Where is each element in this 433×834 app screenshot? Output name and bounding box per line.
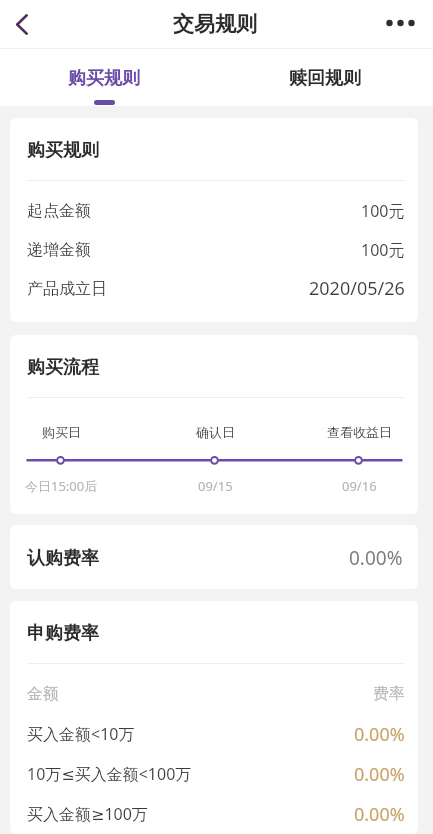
- staticText: 购买日: [42, 424, 81, 440]
- staticText: 0.00%: [354, 722, 405, 747]
- staticText: 购买规则: [27, 139, 99, 162]
- staticText: 产品成立日: [27, 279, 107, 299]
- staticText: 0.00%: [354, 802, 405, 827]
- button[interactable]: More options: [374, 0, 426, 47]
- staticText: 认购费率: [27, 547, 99, 570]
- button[interactable]: 买入金额≥100万: [10, 794, 418, 834]
- staticText: 查看收益日: [327, 424, 392, 440]
- staticText: 金额: [27, 684, 59, 704]
- staticText: 赎回规则: [289, 67, 361, 90]
- staticText: 0.00%: [354, 762, 405, 787]
- staticText: 费率: [373, 684, 405, 704]
- staticText: 买入金额≥100万: [27, 803, 148, 825]
- staticText: 10万≤买入金额<100万: [27, 763, 192, 785]
- staticText: 确认日: [196, 424, 235, 440]
- staticText: 09/15: [198, 477, 233, 495]
- button[interactable]: 赎回规则: [263, 49, 387, 106]
- staticText: 2020/05/26: [309, 276, 405, 301]
- staticText: 购买规则: [68, 67, 140, 90]
- staticText: 100元: [361, 239, 405, 261]
- button[interactable]: 起点金额: [10, 191, 418, 230]
- button[interactable]: 产品成立日: [10, 269, 418, 308]
- staticText: 100元: [361, 200, 405, 222]
- button[interactable]: 10万≤买入金额<100万: [10, 754, 418, 794]
- button[interactable]: 认购费率: [10, 525, 418, 589]
- staticText: 申购费率: [27, 622, 99, 645]
- staticText: 买入金额<10万: [27, 723, 135, 745]
- staticText: 09/16: [342, 477, 377, 495]
- staticText: 购买流程: [27, 356, 99, 379]
- button[interactable]: Back: [0, 1, 45, 47]
- staticText: 交易规则: [173, 11, 257, 37]
- staticText: 起点金额: [27, 201, 91, 221]
- staticText: 递增金额: [27, 240, 91, 260]
- staticText: 0.00%: [349, 545, 403, 571]
- staticText: 今日15:00后: [25, 477, 98, 495]
- button[interactable]: 购买规则: [42, 49, 166, 106]
- button[interactable]: 买入金额<10万: [10, 714, 418, 754]
- button[interactable]: 递增金额: [10, 230, 418, 269]
